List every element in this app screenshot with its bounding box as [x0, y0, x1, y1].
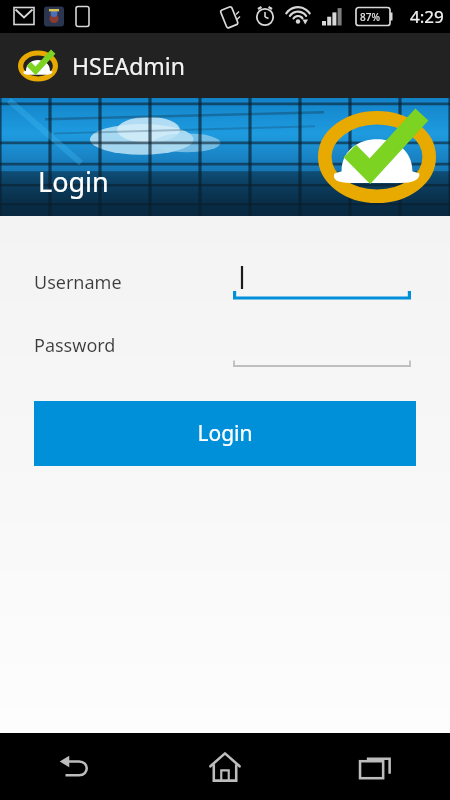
button[interactable]: Back	[0, 733, 150, 800]
button[interactable]: Login	[34, 401, 416, 466]
button[interactable]: Password	[0, 319, 450, 371]
button[interactable]: Username	[0, 256, 450, 308]
other: HSEAdmin logo	[316, 98, 438, 216]
staticText: Login	[197, 419, 253, 448]
staticText: HSEAdmin	[72, 50, 185, 81]
staticText: Password	[34, 333, 116, 358]
staticText: 87%	[360, 10, 380, 24]
button[interactable]: Home	[150, 733, 300, 800]
staticText: Username	[34, 270, 122, 295]
staticText: Login	[38, 163, 109, 200]
button[interactable]: Recent apps	[300, 733, 450, 800]
staticText: 4:29	[410, 5, 444, 28]
